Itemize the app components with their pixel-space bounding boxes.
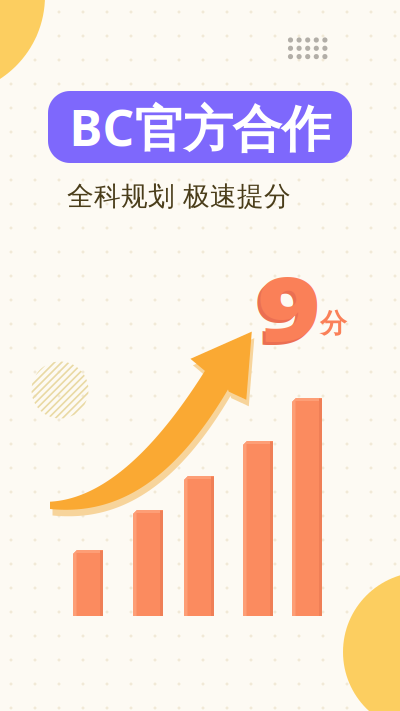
staticText: 全科规划 极速提分 <box>67 180 291 213</box>
button[interactable]: BC官方合作 <box>48 91 352 163</box>
staticText: 分 <box>320 307 347 340</box>
staticText: 9 <box>257 247 309 366</box>
staticText: BC官方合作 <box>69 94 330 160</box>
staticText: 9 <box>254 250 306 369</box>
